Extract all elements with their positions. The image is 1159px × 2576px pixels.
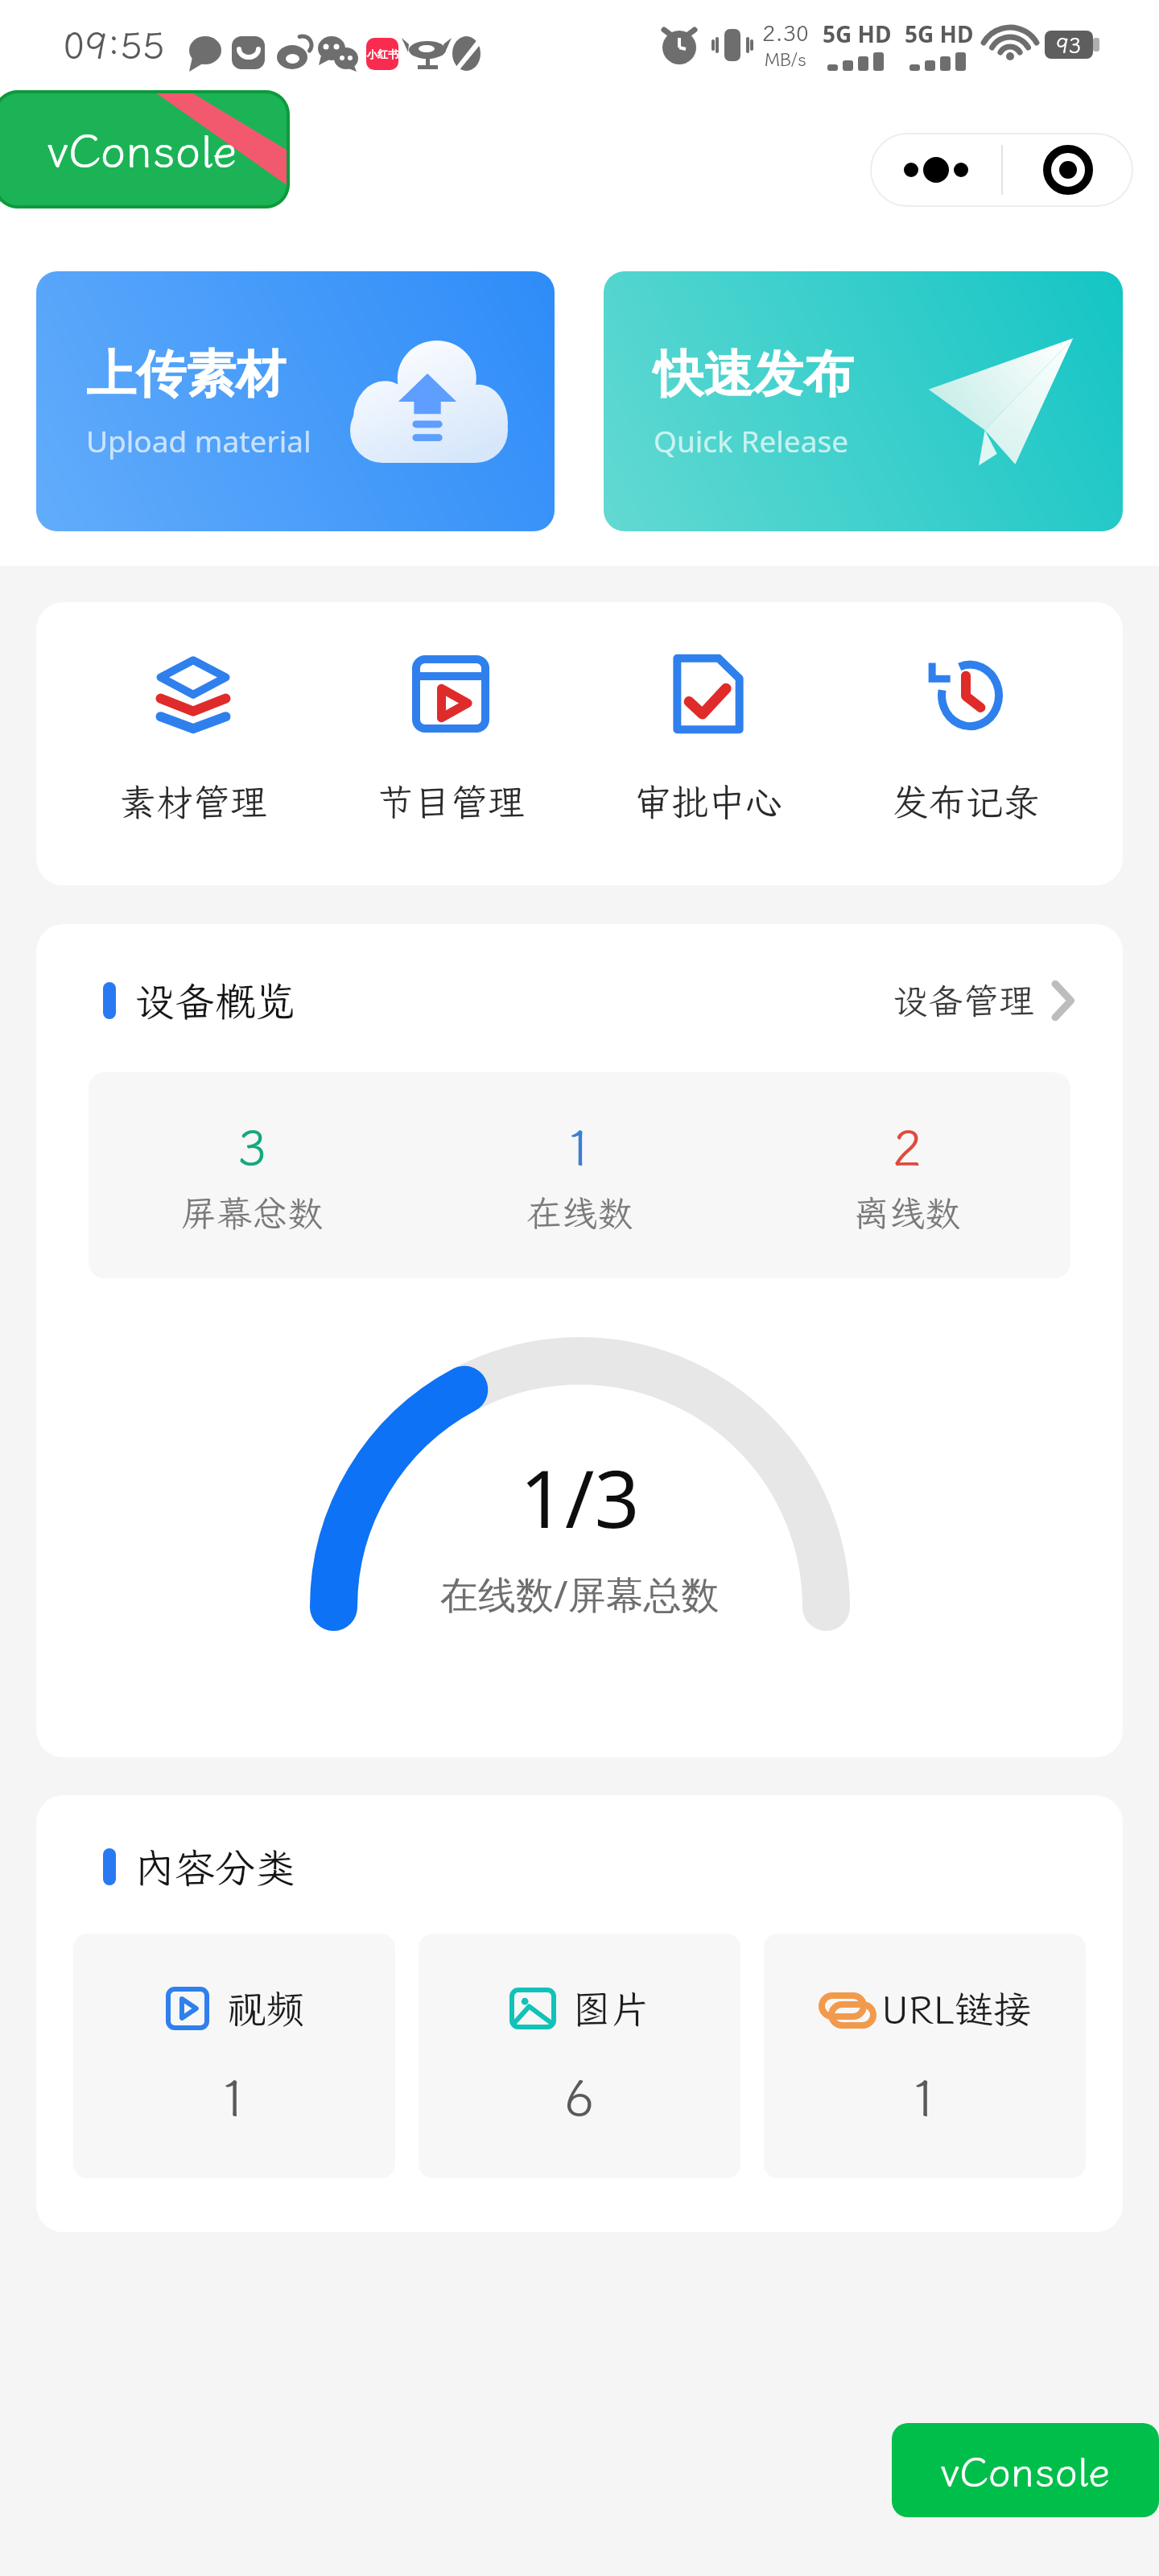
staticText: 1/3 xyxy=(520,1443,640,1550)
staticText: MB/s xyxy=(765,47,807,71)
button[interactable]: vConsole xyxy=(892,2423,1159,2517)
button[interactable]: 快速发布 xyxy=(604,271,1123,531)
staticText: 内容分类 xyxy=(134,1840,295,1893)
staticText: Quick Release xyxy=(654,420,849,460)
staticText: 1 xyxy=(909,2064,940,2130)
staticText: 5G HD xyxy=(823,19,892,49)
button[interactable]: 节目管理 xyxy=(350,654,551,827)
button[interactable]: 素材管理 xyxy=(93,654,294,827)
staticText: 图片 xyxy=(572,1983,650,2033)
staticText: 93 xyxy=(1056,31,1082,59)
staticText: 素材管理 xyxy=(119,778,267,827)
staticText: 审批中心 xyxy=(634,778,782,827)
staticText: 2.30 xyxy=(762,19,810,47)
button[interactable]: vConsole xyxy=(0,90,290,208)
staticText: vConsole xyxy=(940,2444,1111,2497)
staticText: 离线数 xyxy=(854,1190,960,1236)
staticText: 09:55 xyxy=(63,20,165,69)
button[interactable]: 上传素材 xyxy=(36,271,555,531)
staticText: 发布 xyxy=(193,125,283,184)
button[interactable]: More and Close xyxy=(870,133,1133,207)
staticText: 发布记录 xyxy=(892,778,1040,827)
button[interactable]: 图片 xyxy=(419,1934,740,2178)
staticText: vConsole xyxy=(47,120,237,180)
button[interactable]: 设备管理 xyxy=(893,977,1074,1024)
staticText: 小红书 xyxy=(367,47,398,60)
staticText: URL链接 xyxy=(881,1983,1032,2033)
staticText: 快速发布 xyxy=(654,343,853,406)
staticText: 在线数 xyxy=(526,1190,633,1236)
staticText: Upload material xyxy=(86,420,311,460)
staticText: 5G HD xyxy=(905,19,974,49)
staticText: 1 xyxy=(219,2064,250,2130)
button[interactable]: 视频 xyxy=(73,1934,395,2178)
staticText: 视频 xyxy=(227,1983,305,2033)
staticText: 2 xyxy=(893,1115,922,1179)
staticText: 在线数/屏幕总数 xyxy=(440,1568,720,1620)
staticText: 节目管理 xyxy=(377,778,525,827)
staticText: 3 xyxy=(237,1115,266,1179)
button[interactable]: 发布记录 xyxy=(865,654,1066,827)
button[interactable]: URL链接 xyxy=(764,1934,1086,2178)
staticText: 设备管理 xyxy=(893,977,1034,1024)
staticText: 上传素材 xyxy=(86,343,286,406)
staticText: 6 xyxy=(564,2064,595,2130)
staticText: 屏幕总数 xyxy=(181,1190,323,1236)
staticText: 1 xyxy=(565,1115,594,1179)
button[interactable]: 审批中心 xyxy=(608,654,809,827)
staticText: 设备概览 xyxy=(134,974,295,1027)
